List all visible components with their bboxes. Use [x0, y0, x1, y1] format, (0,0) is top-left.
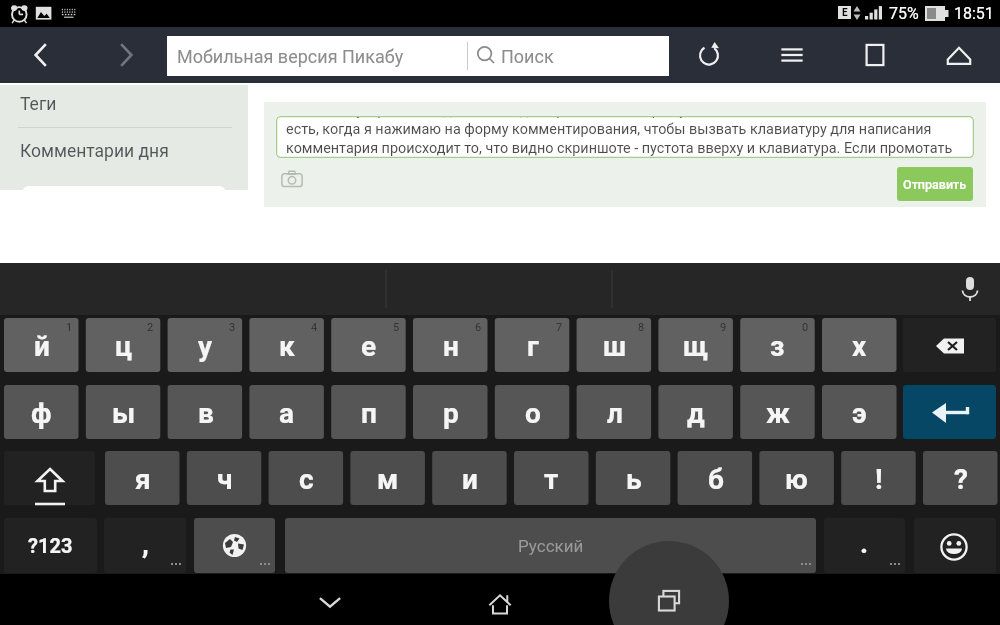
- staticText: 8: [638, 321, 645, 334]
- staticText: 5: [393, 321, 400, 334]
- button[interactable]: л: [577, 385, 652, 439]
- staticText: 7: [556, 321, 563, 334]
- staticText: на любом устройстве здесь есть одна проб…: [286, 116, 725, 119]
- button[interactable]: Shift: [4, 451, 95, 505]
- staticText: п: [361, 397, 377, 430]
- staticText: ,: [142, 527, 149, 560]
- button[interactable]: Change language: [194, 518, 275, 573]
- staticText: 4: [311, 321, 318, 334]
- button[interactable]: е: [331, 318, 406, 372]
- button[interactable]: щ: [658, 318, 733, 372]
- staticText: ц: [115, 330, 133, 363]
- staticText: м: [377, 463, 399, 496]
- staticText: г: [527, 330, 539, 363]
- staticText: E: [842, 7, 848, 19]
- button[interactable]: э: [822, 385, 897, 439]
- staticText: н: [443, 330, 459, 363]
- staticText: е: [361, 330, 377, 363]
- button[interactable]: х: [822, 318, 897, 372]
- staticText: ч: [217, 463, 233, 496]
- button[interactable]: я: [105, 451, 180, 505]
- button[interactable]: ы: [86, 385, 161, 439]
- button[interactable]: й: [4, 318, 79, 372]
- button[interactable]: п: [331, 385, 406, 439]
- staticText: Поиск: [501, 46, 554, 67]
- staticText: ь: [626, 463, 642, 496]
- button[interactable]: г: [495, 318, 570, 372]
- staticText: ф: [31, 397, 52, 430]
- staticText: ?: [954, 463, 968, 496]
- button[interactable]: Home: [466, 574, 534, 625]
- staticText: т: [544, 463, 559, 496]
- staticText: э: [852, 397, 867, 430]
- button[interactable]: Refresh: [686, 27, 732, 83]
- staticText: 9: [720, 321, 727, 334]
- button[interactable]: в: [168, 385, 243, 439]
- button[interactable]: Forward: [97, 27, 153, 83]
- button[interactable]: ч: [187, 451, 262, 505]
- button[interactable]: .: [824, 518, 905, 573]
- button[interactable]: Back: [14, 27, 70, 83]
- staticText: Отправить: [903, 177, 967, 192]
- button[interactable]: Hide keyboard: [296, 574, 364, 625]
- button[interactable]: ю: [759, 451, 834, 505]
- button[interactable]: ?: [923, 451, 998, 505]
- button[interactable]: о: [495, 385, 570, 439]
- staticText: р: [443, 397, 459, 430]
- staticText: л: [607, 397, 623, 430]
- button[interactable]: ь: [596, 451, 671, 505]
- staticText: ?123: [28, 534, 73, 557]
- staticText: х: [852, 330, 867, 363]
- staticText: а: [279, 397, 295, 430]
- button[interactable]: н: [413, 318, 488, 372]
- button[interactable]: Emoji: [914, 518, 996, 573]
- button[interactable]: Отправить: [897, 167, 973, 201]
- button[interactable]: Home: [936, 27, 982, 83]
- button[interactable]: Backspace: [903, 318, 996, 372]
- button[interactable]: и: [432, 451, 507, 505]
- button[interactable]: Русский: [285, 518, 816, 573]
- staticText: 0: [802, 321, 809, 334]
- staticText: й: [34, 330, 50, 363]
- button[interactable]: Attach photo: [279, 166, 305, 192]
- staticText: и: [462, 463, 478, 496]
- staticText: в: [198, 397, 214, 430]
- staticText: у: [198, 330, 213, 363]
- button[interactable]: у: [168, 318, 243, 372]
- staticText: Мобильная версия Пикабу: [177, 46, 404, 67]
- button[interactable]: ?123: [4, 518, 97, 573]
- staticText: ш: [603, 330, 627, 363]
- staticText: ы: [112, 397, 136, 430]
- button[interactable]: с: [269, 451, 344, 505]
- button[interactable]: р: [413, 385, 488, 439]
- button[interactable]: ж: [740, 385, 815, 439]
- button[interactable]: а: [249, 385, 324, 439]
- button[interactable]: [167, 36, 669, 76]
- staticText: есть, когда я нажимаю на форму комментир…: [286, 121, 932, 138]
- staticText: 3: [229, 321, 236, 334]
- button[interactable]: б: [678, 451, 753, 505]
- staticText: я: [135, 463, 151, 496]
- staticText: б: [708, 463, 724, 496]
- button[interactable]: к: [249, 318, 324, 372]
- button[interactable]: ц: [86, 318, 161, 372]
- staticText: Комментарии дня: [20, 141, 169, 162]
- staticText: 6: [475, 321, 482, 334]
- button[interactable]: ф: [4, 385, 79, 439]
- button[interactable]: д: [658, 385, 733, 439]
- button[interactable]: з: [740, 318, 815, 372]
- staticText: д: [687, 397, 705, 430]
- button[interactable]: Enter: [903, 385, 996, 439]
- button[interactable]: ш: [577, 318, 652, 372]
- button[interactable]: Recent apps: [635, 574, 703, 625]
- button[interactable]: ,: [104, 518, 186, 573]
- button[interactable]: т: [514, 451, 589, 505]
- staticText: Теги: [20, 94, 57, 115]
- button[interactable]: Tabs: [852, 27, 898, 83]
- staticText: !: [875, 463, 883, 496]
- staticText: 1: [66, 321, 73, 334]
- button[interactable]: м: [350, 451, 425, 505]
- button[interactable]: Menu: [769, 27, 815, 83]
- button[interactable]: !: [841, 451, 916, 505]
- staticText: .: [860, 527, 869, 560]
